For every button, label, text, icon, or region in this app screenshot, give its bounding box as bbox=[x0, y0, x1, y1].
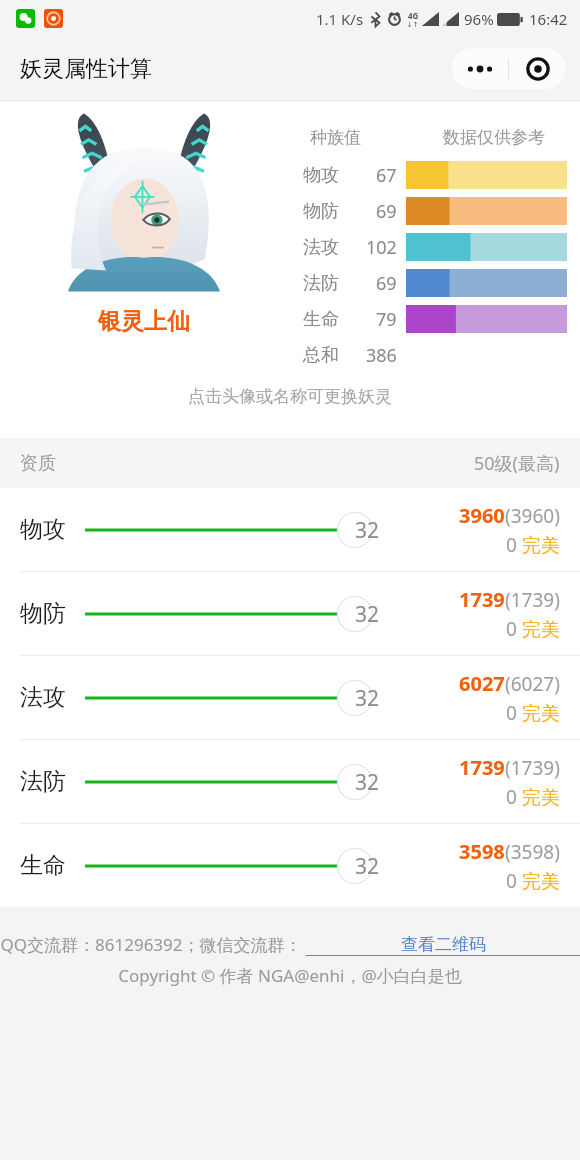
staticText: 69 bbox=[376, 271, 397, 296]
staticText: 32 bbox=[355, 600, 380, 629]
staticText: 完美 bbox=[522, 702, 560, 726]
staticText: 0 bbox=[506, 700, 522, 726]
staticText: 3598 bbox=[459, 838, 505, 865]
staticText: 点击头像或名称可更换妖灵 bbox=[188, 386, 392, 407]
staticText: QQ交流群：861296392；微信交流群： bbox=[0, 933, 302, 956]
staticText: (3598) bbox=[505, 839, 560, 865]
staticText: 法防 bbox=[303, 272, 339, 295]
staticText: 69 bbox=[376, 199, 397, 224]
staticText: 96% bbox=[464, 9, 494, 29]
staticText: 妖灵属性计算 bbox=[20, 55, 152, 83]
staticText: 物攻 bbox=[303, 164, 339, 187]
staticText: 0 bbox=[506, 868, 522, 894]
staticText: 法攻 bbox=[20, 683, 82, 712]
staticText: 银灵上仙 bbox=[98, 307, 190, 336]
staticText: 完美 bbox=[522, 786, 560, 810]
staticText: 6027 bbox=[459, 670, 505, 697]
staticText: 32 bbox=[355, 768, 380, 797]
button[interactable]: 物攻 bbox=[0, 488, 580, 571]
staticText: 32 bbox=[355, 852, 380, 881]
staticText: 法攻 bbox=[303, 236, 339, 259]
staticText: 3960 bbox=[459, 502, 505, 529]
staticText: 79 bbox=[376, 307, 397, 332]
staticText: 67 bbox=[376, 163, 397, 188]
staticText: (6027) bbox=[505, 671, 560, 697]
staticText: 完美 bbox=[522, 618, 560, 642]
button[interactable]: More bbox=[452, 48, 508, 89]
button[interactable]: 查看二维码 bbox=[306, 934, 580, 956]
staticText: 物防 bbox=[303, 200, 339, 223]
staticText: 总和 bbox=[303, 344, 339, 367]
staticText: 1739 bbox=[459, 754, 505, 781]
staticText: 法防 bbox=[20, 767, 82, 796]
button[interactable]: 法防 bbox=[0, 740, 580, 823]
staticText: 32 bbox=[355, 684, 380, 713]
button[interactable]: Close mini program bbox=[509, 48, 566, 89]
staticText: (1739) bbox=[505, 755, 560, 781]
staticText: 50级(最高) bbox=[474, 451, 560, 476]
staticText: 4G bbox=[408, 10, 419, 21]
staticText: 16:42 bbox=[529, 9, 568, 29]
staticText: 生命 bbox=[303, 308, 339, 331]
staticText: 386 bbox=[366, 343, 397, 368]
staticText: 查看二维码 bbox=[401, 934, 486, 955]
staticText: 物攻 bbox=[20, 515, 82, 544]
staticText: 1739 bbox=[459, 586, 505, 613]
staticText: 资质 bbox=[20, 452, 56, 475]
staticText: 32 bbox=[355, 516, 380, 545]
button[interactable]: 生命 bbox=[0, 824, 580, 907]
staticText: (1739) bbox=[505, 587, 560, 613]
staticText: 0 bbox=[506, 532, 522, 558]
staticText: 完美 bbox=[522, 870, 560, 894]
staticText: 1.1 K/s bbox=[316, 9, 364, 29]
staticText: 0 bbox=[506, 784, 522, 810]
staticText: 0 bbox=[506, 616, 522, 642]
button[interactable]: 物防 bbox=[0, 572, 580, 655]
staticText: 数据仅供参考 bbox=[443, 127, 545, 148]
staticText: Copyright © 作者 NGA@enhi，@小白白是也 bbox=[118, 964, 462, 987]
staticText: 完美 bbox=[522, 534, 560, 558]
staticText: 物防 bbox=[20, 599, 82, 628]
button[interactable]: 法攻 bbox=[0, 656, 580, 739]
staticText: (3960) bbox=[505, 503, 560, 529]
button[interactable]: 银灵上仙 bbox=[64, 133, 224, 336]
staticText: ↓↑ bbox=[407, 21, 419, 29]
staticText: 种族值 bbox=[310, 127, 361, 148]
staticText: 生命 bbox=[20, 851, 82, 880]
staticText: 102 bbox=[366, 235, 397, 260]
